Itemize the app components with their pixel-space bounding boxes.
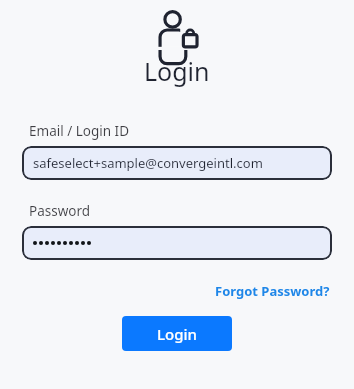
staticText: Login xyxy=(144,54,210,88)
button[interactable]: Forgot Password? xyxy=(213,280,332,302)
button[interactable]: safeselect+sample@convergeintl.com xyxy=(22,146,332,180)
staticText: Forgot Password? xyxy=(215,282,330,300)
other: Login account icon xyxy=(155,10,199,50)
staticText: safeselect+sample@convergeintl.com xyxy=(33,154,263,172)
button[interactable] xyxy=(22,226,332,260)
staticText: Login xyxy=(157,324,197,344)
button[interactable]: Login xyxy=(122,316,232,351)
staticText: Email / Login ID xyxy=(29,122,130,140)
staticText: Password xyxy=(29,202,91,220)
